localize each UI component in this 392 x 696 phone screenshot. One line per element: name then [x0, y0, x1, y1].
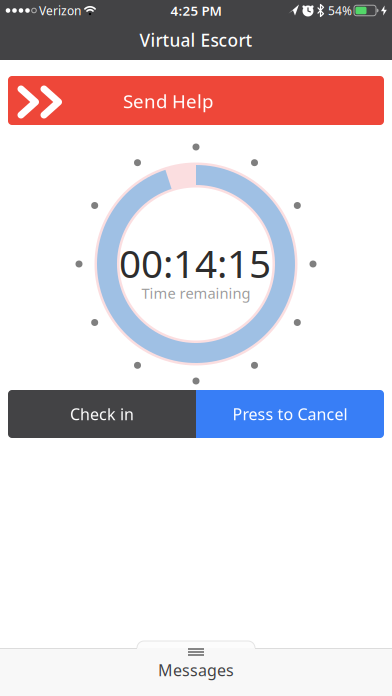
staticText: Press to Cancel	[232, 403, 347, 425]
button[interactable]: Messages	[0, 641, 392, 696]
button[interactable]: Check in	[8, 390, 196, 438]
staticText: Check in	[70, 403, 134, 425]
staticText: 00:14:15	[119, 237, 271, 289]
button[interactable]: Press to Cancel	[196, 390, 384, 438]
staticText: Verizon	[39, 2, 81, 18]
staticText: 4:25 PM	[170, 2, 221, 19]
staticText: Virtual Escort	[139, 28, 252, 51]
staticText: Send Help	[123, 89, 213, 113]
button[interactable]: Send Help	[8, 76, 384, 125]
staticText: 54%	[328, 2, 352, 18]
staticText: Time remaining	[141, 283, 250, 303]
staticText: Messages	[158, 659, 234, 681]
